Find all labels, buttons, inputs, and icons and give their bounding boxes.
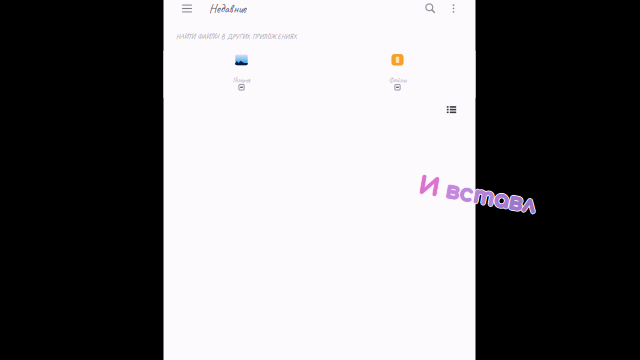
- staticText: л: [523, 183, 536, 208]
- staticText: в: [509, 183, 523, 209]
- staticText: а: [495, 183, 510, 209]
- staticText: т: [473, 182, 494, 208]
- staticText: а: [493, 183, 508, 208]
- staticText: И: [418, 182, 438, 207]
- staticText: в: [509, 182, 523, 208]
- staticText: т: [475, 183, 496, 208]
- staticText: а: [493, 182, 508, 207]
- staticText: в: [445, 183, 459, 208]
- staticText: НАЙТИ ФАЙЛЫ В ДРУГИХ ПРИЛОЖЕНИЯХ: [176, 32, 297, 41]
- staticText: т: [473, 184, 494, 209]
- staticText: [437, 183, 444, 208]
- staticText: [440, 182, 447, 207]
- staticText: И: [420, 182, 440, 207]
- staticText: л: [525, 182, 538, 207]
- staticText: в: [508, 183, 522, 208]
- staticText: т: [473, 185, 494, 210]
- staticText: в: [508, 182, 522, 207]
- staticText: т: [475, 182, 496, 207]
- button[interactable]: Галерея: [163, 51, 319, 98]
- staticText: в: [509, 184, 523, 209]
- staticText: И: [418, 185, 438, 210]
- staticText: И: [417, 184, 437, 209]
- staticText: л: [523, 185, 536, 210]
- button[interactable]: Open navigation menu: [175, 0, 199, 16]
- staticText: в: [447, 182, 461, 207]
- staticText: в: [510, 183, 524, 209]
- staticText: в: [508, 184, 522, 209]
- staticText: т: [474, 183, 495, 208]
- staticText: в: [509, 182, 523, 207]
- staticText: в: [510, 182, 524, 208]
- staticText: а: [494, 185, 509, 210]
- staticText: в: [510, 183, 524, 208]
- staticText: т: [473, 182, 494, 207]
- staticText: в: [444, 184, 458, 209]
- staticText: в: [511, 184, 525, 209]
- staticText: л: [522, 183, 535, 208]
- staticText: а: [495, 183, 510, 208]
- staticText: с: [459, 183, 473, 209]
- staticText: а: [494, 182, 509, 207]
- staticText: л: [525, 183, 538, 208]
- staticText: в: [445, 183, 459, 209]
- staticText: л: [524, 183, 537, 209]
- staticText: И: [418, 183, 438, 208]
- staticText: И: [419, 183, 439, 208]
- staticText: л: [523, 184, 536, 209]
- staticText: в: [509, 183, 523, 208]
- staticText: л: [523, 183, 536, 208]
- staticText: т: [473, 183, 494, 208]
- staticText: [438, 182, 445, 208]
- staticText: а: [496, 184, 511, 209]
- staticText: И: [418, 181, 438, 206]
- staticText: а: [494, 183, 509, 209]
- staticText: а: [494, 182, 509, 208]
- staticText: с: [461, 183, 475, 208]
- staticText: с: [460, 183, 474, 209]
- staticText: И: [418, 183, 438, 208]
- staticText: И: [419, 182, 439, 208]
- staticText: И: [419, 183, 439, 209]
- staticText: т: [474, 182, 495, 208]
- staticText: в: [445, 182, 459, 207]
- staticText: И: [418, 182, 438, 208]
- staticText: [440, 183, 447, 208]
- button[interactable]: Search: [418, 0, 442, 16]
- staticText: л: [524, 182, 537, 208]
- staticText: т: [474, 183, 495, 209]
- staticText: в: [446, 183, 460, 208]
- staticText: Недавние: [209, 1, 246, 16]
- staticText: с: [460, 182, 474, 208]
- staticText: в: [509, 185, 523, 210]
- staticText: [440, 184, 447, 209]
- button[interactable]: Файлы: [319, 51, 475, 98]
- staticText: Галерея: [232, 75, 250, 85]
- staticText: л: [522, 182, 535, 207]
- staticText: л: [523, 182, 536, 208]
- staticText: [438, 183, 445, 209]
- staticText: с: [459, 184, 473, 209]
- staticText: с: [459, 182, 473, 207]
- staticText: в: [445, 182, 459, 208]
- staticText: [438, 183, 445, 208]
- staticText: с: [458, 184, 472, 209]
- staticText: И: [418, 184, 438, 209]
- staticText: л: [522, 184, 535, 209]
- staticText: с: [461, 184, 475, 209]
- button[interactable]: More options: [442, 0, 464, 16]
- staticText: т: [473, 183, 494, 208]
- staticText: в: [444, 182, 458, 207]
- staticText: л: [524, 183, 537, 208]
- staticText: в: [509, 181, 523, 206]
- staticText: т: [472, 184, 493, 209]
- staticText: в: [445, 183, 459, 208]
- button[interactable]: Switch to list view: [441, 103, 461, 117]
- staticText: с: [459, 183, 473, 208]
- staticText: в: [511, 183, 525, 208]
- staticText: с: [459, 181, 473, 206]
